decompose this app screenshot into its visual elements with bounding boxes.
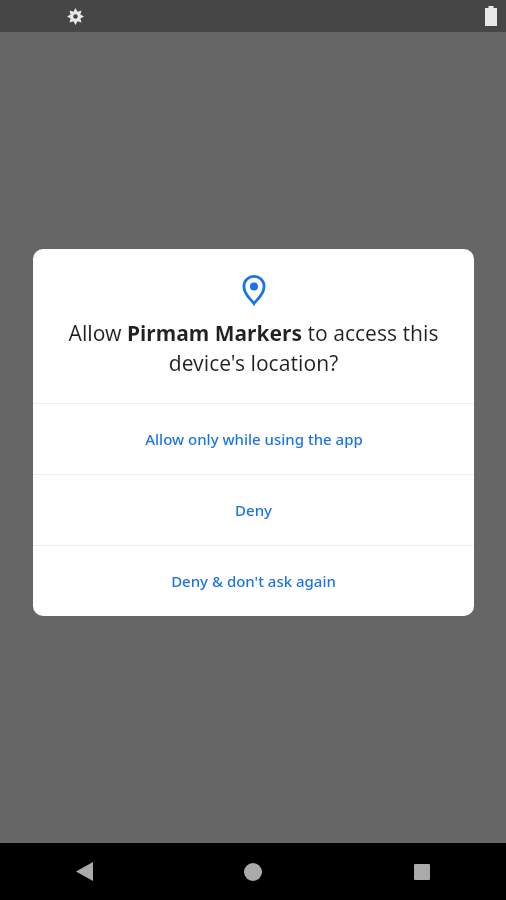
other: Battery <box>485 6 497 26</box>
staticText: Allow Pirmam Markers to access this devi… <box>55 319 452 377</box>
button[interactable]: Deny <box>33 475 474 545</box>
button[interactable]: Home <box>168 843 337 900</box>
button[interactable]: Back <box>0 843 168 900</box>
other: Settings <box>67 8 84 25</box>
staticText: Deny <box>235 500 272 520</box>
button[interactable]: Recent apps <box>337 843 506 900</box>
button[interactable]: Allow only while using the app <box>33 404 474 474</box>
button[interactable]: Deny & don't ask again <box>33 546 474 616</box>
staticText: Allow only while using the app <box>145 429 363 449</box>
staticText: Deny & don't ask again <box>171 571 336 591</box>
